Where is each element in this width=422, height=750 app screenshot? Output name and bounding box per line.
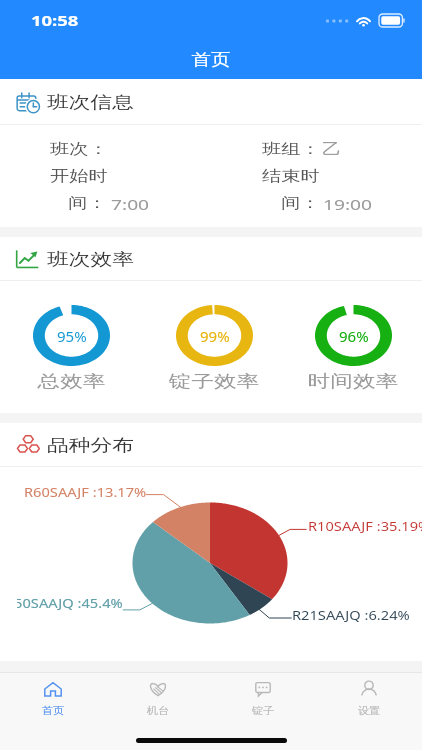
staticText: 首页 <box>42 704 64 717</box>
staticText: R10SAAJF :35.19% <box>308 518 422 534</box>
staticText: 间： <box>68 194 106 213</box>
button[interactable]: 锭子 <box>210 679 316 717</box>
staticText: 时间效率 <box>308 371 398 392</box>
staticText: R60SAAJF :13.17% <box>24 484 147 500</box>
staticText: 总效率 <box>38 371 105 392</box>
staticText: 设置 <box>358 704 380 717</box>
button[interactable]: 首页 <box>0 679 105 717</box>
staticText: 机台 <box>147 704 169 717</box>
staticText: 班次： <box>50 140 108 159</box>
staticText: 乙 <box>322 140 341 159</box>
staticText: 7:00 <box>111 194 149 214</box>
staticText: 班组： <box>262 140 320 159</box>
staticText: 锭子 <box>252 704 274 717</box>
staticText: 95% <box>57 326 87 346</box>
staticText: 19:00 <box>323 194 373 214</box>
staticText: R50SAAJQ :45.4% <box>17 595 123 611</box>
button[interactable]: 机台 <box>105 679 210 717</box>
staticText: 96% <box>339 326 369 346</box>
staticText: 品种分布 <box>47 435 134 456</box>
staticText: 锭子效率 <box>169 371 259 392</box>
staticText: 结束时 <box>262 167 320 186</box>
staticText: 班次效率 <box>47 249 134 270</box>
button[interactable]: 设置 <box>316 679 422 717</box>
staticText: 班次信息 <box>47 92 134 113</box>
staticText: 首页 <box>191 50 230 70</box>
staticText: 开始时 <box>50 167 108 186</box>
staticText: 间： <box>281 194 319 213</box>
staticText: 99% <box>200 326 230 346</box>
staticText: R21SAAJQ :6.24% <box>292 607 410 623</box>
staticText: 10:58 <box>31 10 79 30</box>
